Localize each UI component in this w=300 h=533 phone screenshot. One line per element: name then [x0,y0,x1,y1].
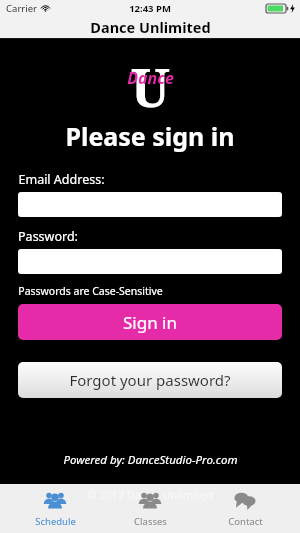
staticText: Password: [18,228,78,245]
button[interactable]: Sign in [18,304,282,340]
button[interactable]: Classes [110,484,190,533]
staticText: Contact [228,515,263,528]
staticText: Classes [134,515,167,528]
staticText: Forgot your password? [69,370,231,390]
staticText: Sign in [123,311,177,334]
staticText: Schedule [35,515,76,528]
staticText: Carrier [6,2,37,15]
staticText: Powered by: DanceStudio-Pro.com [63,452,238,468]
button[interactable] [18,192,282,217]
staticText: Email Address: [18,171,105,188]
staticText: © 2017 Dance Unlimited [87,487,213,502]
button[interactable] [18,249,282,274]
staticText: U [131,51,170,109]
staticText: Passwords are Case-Sensitive [18,284,163,298]
button[interactable]: Schedule [15,484,95,533]
staticText: Please sign in [65,119,235,153]
button[interactable]: Contact [205,484,285,533]
staticText: Dance [127,67,174,89]
button[interactable]: Forgot your password? [18,362,282,398]
staticText: 12:43 PM [129,2,171,15]
staticText: Dance Unlimited [90,17,211,37]
